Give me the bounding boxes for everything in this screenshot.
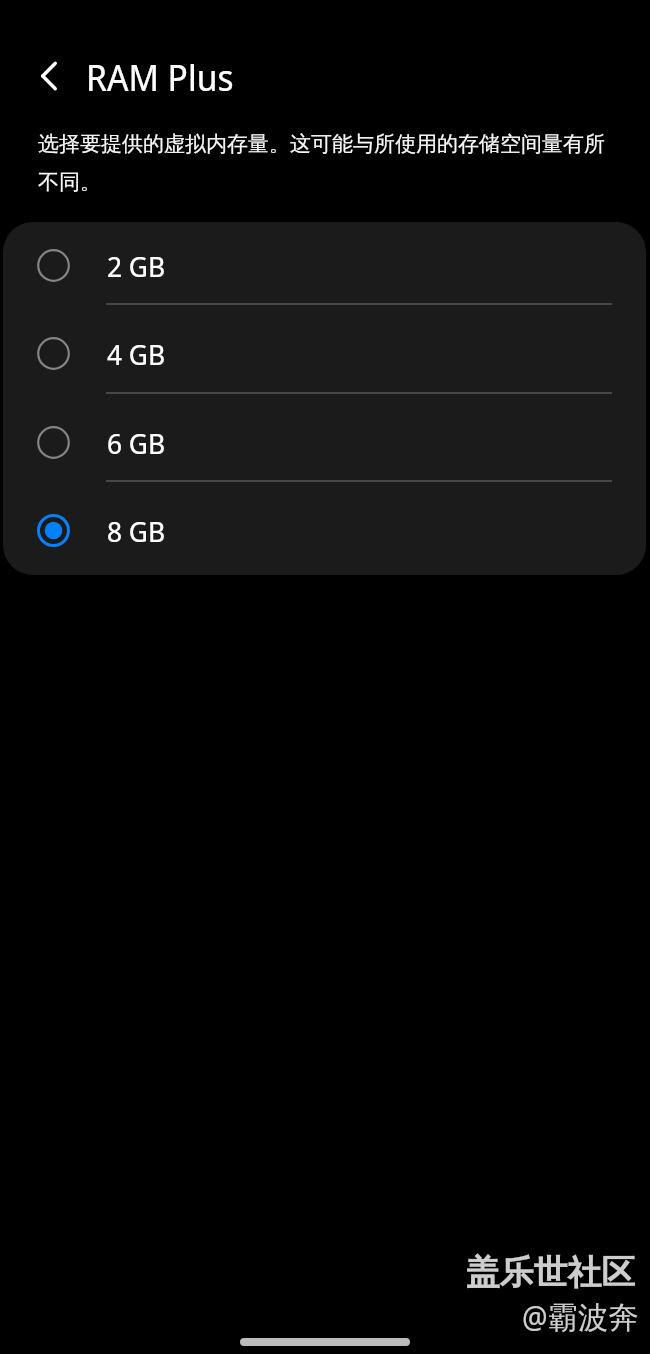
button[interactable]: 6 GB [3, 399, 646, 487]
staticText: 6 GB [107, 424, 166, 462]
staticText: 选择要提供的虚拟内存量。这可能与所使用的存储空间量有所不同。 [38, 131, 616, 195]
button[interactable]: 2 GB [3, 222, 646, 310]
staticText: 2 GB [107, 247, 166, 285]
staticText: 4 GB [107, 335, 166, 373]
staticText: RAM Plus [86, 53, 234, 101]
button[interactable]: 8 GB [3, 487, 646, 575]
staticText: @霸波奔 [522, 1296, 639, 1337]
button[interactable]: Back [22, 49, 76, 103]
button[interactable]: 4 GB [3, 310, 646, 398]
staticText: 盖乐世社区 [466, 1251, 635, 1294]
staticText: 8 GB [107, 512, 166, 550]
